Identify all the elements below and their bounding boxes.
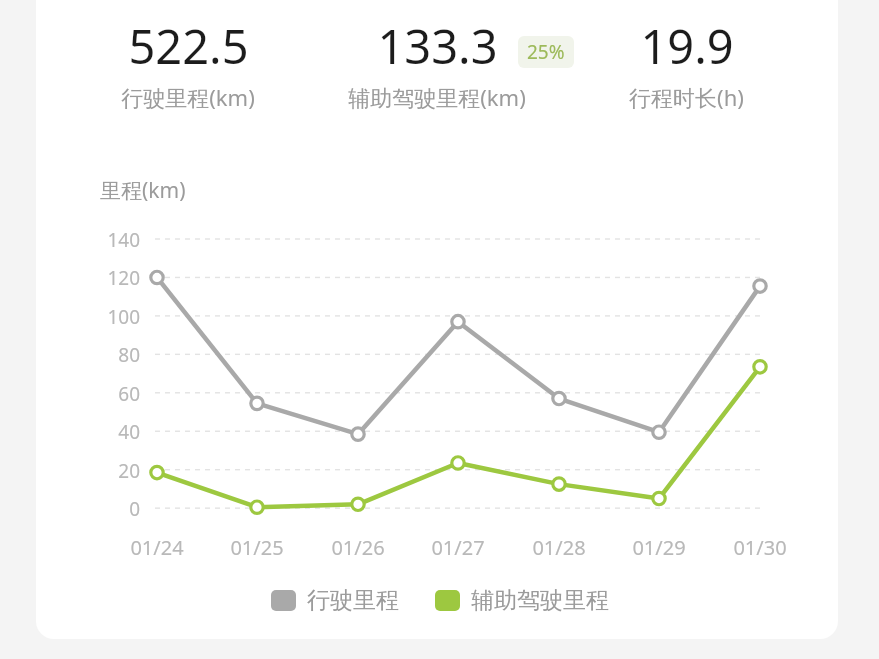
staticText: 133.3 <box>377 14 498 76</box>
staticText: 01/29 <box>632 534 686 561</box>
button[interactable]: 行驶里程 <box>271 586 399 615</box>
staticText: 01/30 <box>733 534 787 561</box>
staticText: 01/27 <box>431 534 485 561</box>
staticText: 01/26 <box>331 534 385 561</box>
staticText: 20 <box>118 458 140 484</box>
staticText: 140 <box>107 227 140 253</box>
button[interactable]: 133.3 <box>322 14 552 124</box>
staticText: 19.9 <box>640 14 734 76</box>
button[interactable]: 522.5 <box>73 14 303 124</box>
button[interactable]: 19.9 <box>571 14 801 124</box>
button[interactable]: 辅助驾驶里程 <box>435 586 609 615</box>
other: 辅助驾驶里程 <box>435 590 460 611</box>
staticText: 60 <box>118 381 140 407</box>
staticText: 01/28 <box>532 534 586 561</box>
staticText: 里程(km) <box>100 176 186 205</box>
staticText: 01/24 <box>130 534 184 561</box>
staticText: 01/25 <box>230 534 284 561</box>
staticText: 行驶里程(km) <box>121 82 255 112</box>
staticText: 辅助驾驶里程 <box>471 586 609 615</box>
staticText: 行程时长(h) <box>629 82 744 112</box>
staticText: 辅助驾驶里程(km) <box>348 82 526 112</box>
staticText: 120 <box>107 265 140 291</box>
button[interactable]: 25% <box>527 39 565 65</box>
staticText: 25% <box>527 39 565 65</box>
staticText: 40 <box>118 419 140 445</box>
staticText: 100 <box>107 304 140 330</box>
staticText: 0 <box>129 496 140 522</box>
staticText: 行驶里程 <box>307 586 399 615</box>
other: 行驶里程 <box>271 590 296 611</box>
staticText: 522.5 <box>128 14 249 76</box>
staticText: 80 <box>118 342 140 368</box>
